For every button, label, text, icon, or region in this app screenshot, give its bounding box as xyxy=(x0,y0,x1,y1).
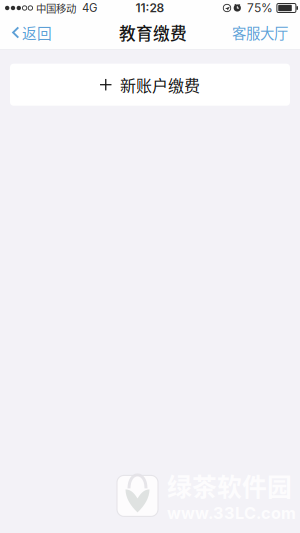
staticText: 11:28 xyxy=(135,1,164,15)
staticText: 绿茶软件园 xyxy=(167,467,292,503)
staticText: 中国移动 xyxy=(36,0,76,16)
staticText: 返回 xyxy=(22,22,52,43)
button[interactable]: 新账户缴费 xyxy=(10,64,290,106)
staticText: 新账户缴费 xyxy=(120,73,200,96)
staticText: 75% xyxy=(247,1,273,15)
button[interactable]: 客服大厅 xyxy=(224,16,299,48)
button[interactable]: 返回 xyxy=(6,16,60,48)
staticText: www.33LC.com xyxy=(167,503,296,523)
staticText: 4G xyxy=(82,1,97,15)
staticText: 教育缴费 xyxy=(119,20,187,44)
staticText: 客服大厅 xyxy=(232,22,288,43)
